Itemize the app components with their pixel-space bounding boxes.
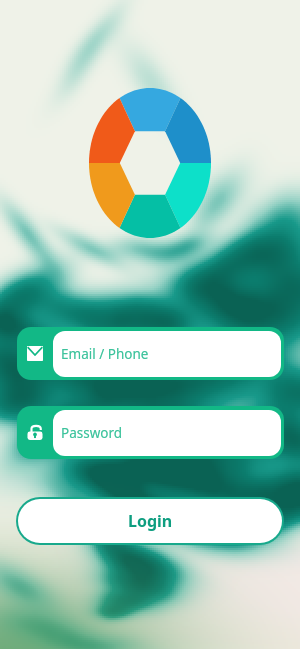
- staticText: Password: [61, 424, 123, 442]
- button[interactable]: Login: [18, 499, 282, 543]
- button[interactable]: Password: [17, 406, 284, 459]
- staticText: Email / Phone: [61, 345, 149, 363]
- button[interactable]: Email / Phone: [17, 327, 284, 380]
- staticText: Login: [128, 510, 173, 532]
